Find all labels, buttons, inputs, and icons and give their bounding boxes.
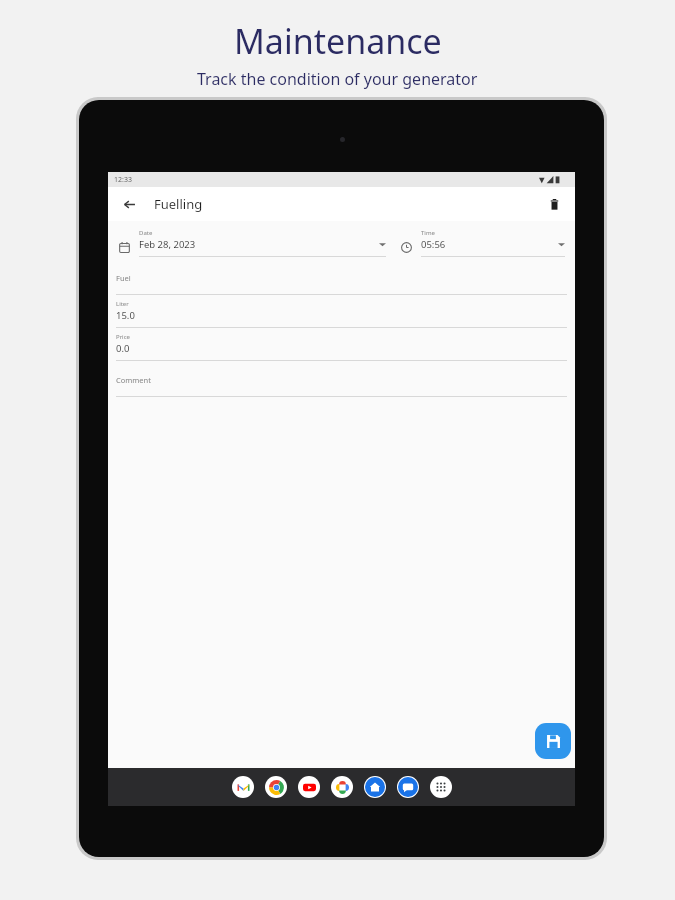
staticText: Maintenance (234, 18, 442, 64)
staticText: Liter (116, 300, 129, 308)
button[interactable]: Photos (331, 776, 353, 798)
staticText: Comment (116, 375, 151, 385)
button[interactable]: Price (116, 328, 567, 361)
button[interactable]: Liter (116, 295, 567, 328)
staticText: Fuel (116, 273, 131, 283)
staticText: 12:33 (114, 175, 132, 185)
button[interactable]: Back (118, 193, 140, 215)
button[interactable]: Fuel (116, 266, 567, 295)
button[interactable]: Delete (543, 193, 565, 215)
staticText: Track the condition of your generator (197, 68, 478, 90)
staticText: 15.0 (116, 309, 135, 322)
button[interactable]: Date (116, 229, 386, 257)
staticText: Date (139, 229, 153, 237)
button[interactable]: Messages (397, 776, 419, 798)
staticText: 0.0 (116, 342, 130, 355)
button[interactable]: Save (535, 723, 571, 759)
button[interactable]: Chrome (265, 776, 287, 798)
staticText: Fuelling (154, 195, 203, 213)
button[interactable]: All apps (430, 776, 452, 798)
button[interactable]: Comment (116, 368, 567, 397)
staticText: Price (116, 333, 130, 341)
staticText: Time (421, 229, 435, 237)
button[interactable]: Home (364, 776, 386, 798)
staticText: Feb 28, 2023 (139, 238, 196, 251)
staticText: 05:56 (421, 238, 446, 251)
button[interactable]: Gmail (232, 776, 254, 798)
button[interactable]: YouTube (298, 776, 320, 798)
button[interactable]: Time (398, 229, 565, 257)
